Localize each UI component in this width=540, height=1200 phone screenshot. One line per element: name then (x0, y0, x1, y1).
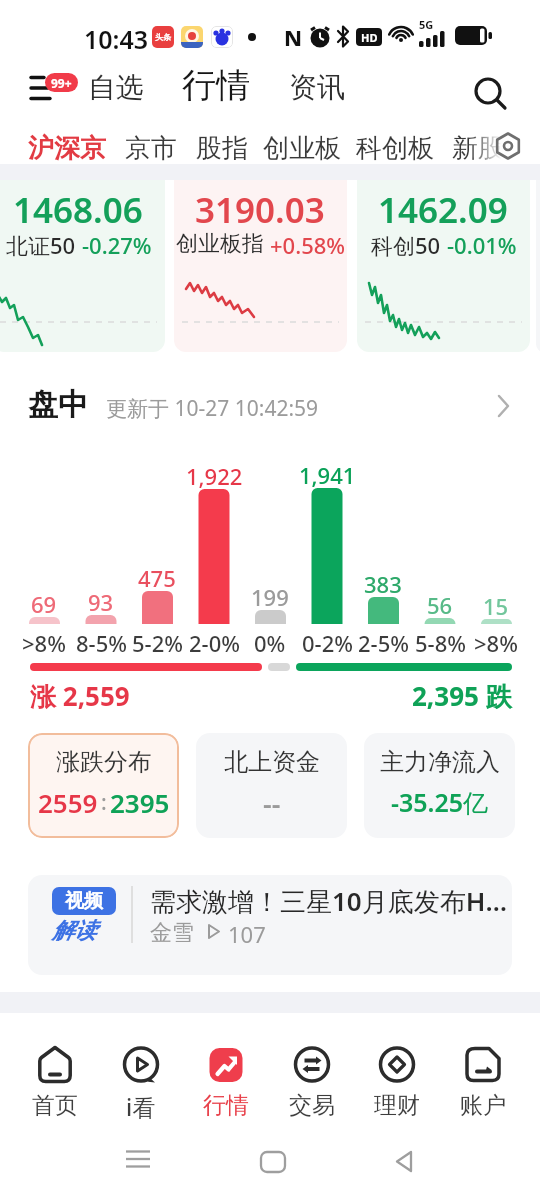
button[interactable]: 交易 (270, 1045, 354, 1129)
button[interactable]: 行情 (184, 1045, 268, 1129)
staticText: 107 (228, 919, 266, 949)
button[interactable]: i看 (99, 1045, 183, 1129)
staticText: 交易 (289, 1091, 335, 1120)
button[interactable] (494, 131, 526, 163)
button[interactable]: 创业板 (263, 132, 341, 165)
staticText: -0.27% (82, 230, 152, 260)
staticText: 475 (138, 563, 176, 593)
staticText: 10:43 (84, 22, 149, 56)
staticText: 行情 (182, 64, 250, 107)
staticText: 2559 (38, 785, 98, 820)
staticText: 盘中 (28, 386, 88, 424)
staticText: 行情 (203, 1091, 249, 1120)
staticText: 199 (251, 582, 289, 612)
staticText: -35.25亿 (391, 785, 489, 819)
button[interactable]: 股指 (196, 132, 248, 165)
button[interactable]: 自选 (88, 70, 144, 105)
staticText: 更新于 10-27 10:42:59 (106, 394, 319, 423)
button[interactable]: 视频 (28, 875, 512, 975)
staticText: 1,941 (299, 460, 356, 490)
staticText: -0.01% (447, 230, 517, 260)
button[interactable]: 北上资金 (196, 733, 347, 838)
staticText: 2-0% (189, 628, 240, 658)
button[interactable]: 主力净流入 (364, 733, 515, 838)
staticText: 93 (88, 587, 114, 617)
staticText: >8% (22, 628, 66, 658)
staticText: HD (361, 30, 378, 45)
staticText: 5-2% (132, 628, 183, 658)
staticText: 股指 (196, 132, 248, 165)
staticText: 科创板 (356, 132, 434, 165)
staticText: 涨跌分布 (56, 747, 152, 777)
staticText: 首页 (32, 1091, 78, 1120)
button[interactable]: 京市 (125, 132, 177, 165)
staticText: 8-5% (76, 628, 127, 658)
staticText: 头条 (155, 32, 171, 42)
staticText: 3190.03 (195, 186, 325, 234)
staticText: 视频 (65, 889, 103, 913)
staticText: 5G (419, 17, 434, 32)
staticText: 科创50 (371, 230, 441, 260)
staticText: +0.58% (270, 230, 346, 260)
staticText: 解读 (52, 917, 96, 945)
staticText: 0% (254, 628, 286, 658)
button[interactable]: 理财 (355, 1045, 439, 1129)
staticText: 资讯 (289, 70, 345, 105)
button[interactable] (468, 72, 516, 116)
button[interactable]: 行情 (182, 64, 250, 107)
staticText: 创业板 (263, 132, 341, 165)
button[interactable]: 首页 (13, 1045, 97, 1129)
button[interactable]: 科创板 (356, 132, 434, 165)
staticText: 沪深京 (28, 132, 106, 165)
staticText: 1462.09 (378, 186, 508, 234)
staticText: 383 (364, 569, 402, 599)
staticText: -- (263, 785, 281, 822)
button[interactable]: 沪深京 (28, 132, 106, 165)
staticText: 创业板指 (176, 230, 264, 258)
button[interactable]: 新股 (452, 132, 504, 165)
staticText: 理财 (374, 1091, 420, 1120)
staticText: 自选 (88, 70, 144, 105)
staticText: 1,922 (186, 461, 243, 491)
staticText: 新股 (452, 132, 504, 165)
staticText: 15 (483, 591, 509, 621)
staticText: 2-5% (358, 628, 409, 658)
staticText: 需求激增！三星10月底发布H… (150, 883, 508, 919)
staticText: N (284, 22, 303, 52)
staticText: 2,395 跌 (412, 678, 512, 714)
staticText: i看 (126, 1091, 156, 1122)
staticText: 涨 2,559 (30, 678, 130, 714)
button[interactable]: 涨跌分布 (28, 733, 179, 838)
staticText: 主力净流入 (380, 747, 500, 777)
staticText: 2395 (110, 785, 170, 820)
button[interactable]: 账户 (441, 1045, 525, 1129)
staticText: 0-2% (302, 628, 353, 658)
staticText: : (101, 788, 107, 817)
button[interactable]: 3190.03 (174, 180, 347, 352)
staticText: 69 (31, 589, 57, 619)
staticText: >8% (474, 628, 518, 658)
staticText: 金雪 (150, 919, 194, 947)
staticText: 北证50 (6, 230, 76, 260)
button[interactable] (24, 66, 84, 112)
button[interactable]: 1462.09 (357, 180, 530, 352)
staticText: 京市 (125, 132, 177, 165)
staticText: 账户 (460, 1091, 506, 1120)
staticText: 1468.06 (13, 186, 143, 234)
staticText: 56 (427, 590, 453, 620)
button[interactable]: 1468.06 (0, 180, 165, 352)
staticText: 北上资金 (224, 747, 320, 777)
button[interactable]: 资讯 (289, 70, 345, 105)
staticText: 5-8% (415, 628, 466, 658)
staticText: 99+ (51, 75, 72, 91)
